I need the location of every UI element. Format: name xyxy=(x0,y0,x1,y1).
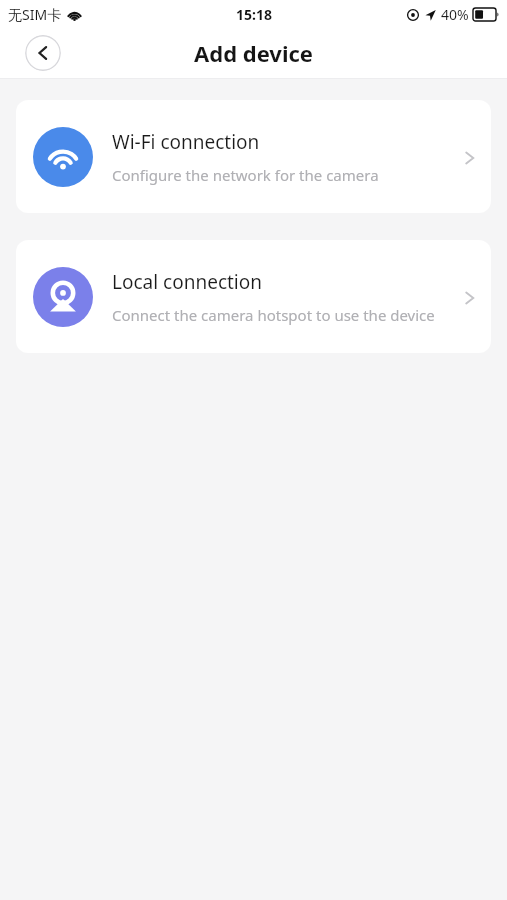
staticText: Add device xyxy=(194,38,313,68)
staticText: Connect the camera hotspot to use the de… xyxy=(112,305,435,325)
button[interactable]: Local connection xyxy=(16,240,491,353)
button[interactable]: Wi-Fi connection xyxy=(16,100,491,213)
staticText: 40% xyxy=(441,5,469,24)
staticText: Local connection xyxy=(112,269,263,295)
staticText: Wi-Fi connection xyxy=(112,129,260,155)
staticText: 无SIM卡 xyxy=(8,5,62,24)
staticText: 15:18 xyxy=(236,5,272,24)
staticText: Configure the network for the camera xyxy=(112,165,379,185)
button[interactable]: Back xyxy=(25,35,61,71)
